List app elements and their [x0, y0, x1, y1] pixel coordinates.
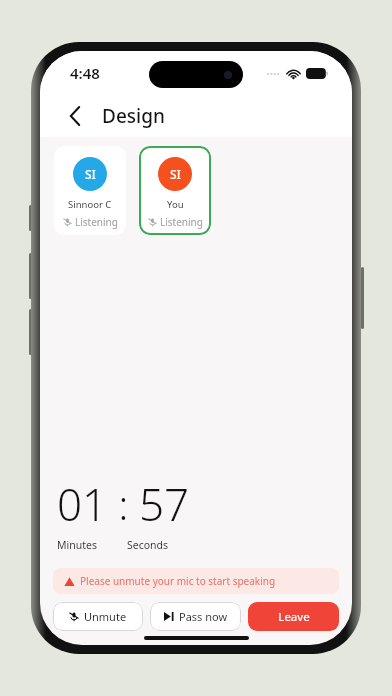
staticText: SI — [170, 166, 181, 182]
staticText: Seconds — [127, 538, 169, 552]
button[interactable]: Leave — [248, 602, 339, 631]
button[interactable]: SI — [54, 146, 126, 235]
button[interactable]: Pass now — [150, 602, 241, 631]
staticText: Unmute — [84, 609, 127, 624]
button[interactable]: SI — [139, 146, 211, 235]
button[interactable]: Back — [60, 101, 90, 131]
staticText: Design — [102, 103, 165, 129]
staticText: 4:48 — [70, 63, 100, 83]
staticText: 57 — [139, 474, 190, 534]
staticText: Pass now — [179, 609, 228, 624]
staticText: : — [108, 477, 139, 531]
staticText: Listening — [160, 215, 203, 229]
staticText: 01 — [57, 474, 108, 534]
staticText: SI — [85, 166, 96, 182]
staticText: Minutes — [57, 538, 115, 552]
staticText: Please unmute your mic to start speaking — [80, 574, 276, 588]
staticText: You — [167, 198, 184, 211]
staticText: Listening — [75, 215, 118, 229]
button[interactable]: Unmute — [53, 602, 143, 631]
staticText: Leave — [278, 609, 310, 625]
staticText: Sinnoor C — [68, 198, 112, 211]
